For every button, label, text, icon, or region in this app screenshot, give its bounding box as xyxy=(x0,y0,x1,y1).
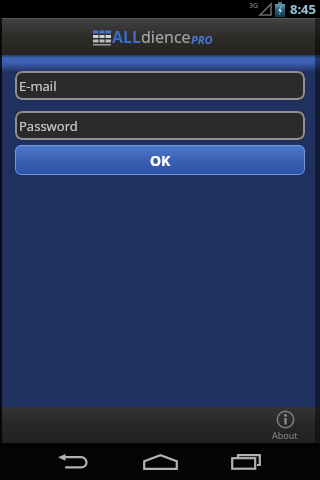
staticText: 3G xyxy=(249,1,259,11)
staticText: PRO xyxy=(191,32,213,47)
staticText: Password xyxy=(19,117,78,135)
staticText: ALL xyxy=(112,26,141,48)
staticText: 8:45 xyxy=(290,0,316,18)
button[interactable] xyxy=(140,443,180,480)
button[interactable]: OK xyxy=(15,145,305,175)
button[interactable]: E-mail xyxy=(15,71,305,100)
button[interactable] xyxy=(52,443,92,480)
button[interactable]: About xyxy=(272,410,298,441)
staticText: E-mail xyxy=(19,77,57,95)
staticText: About xyxy=(272,429,298,441)
button[interactable] xyxy=(226,443,266,480)
button[interactable]: Password xyxy=(15,111,305,140)
staticText: dience xyxy=(141,26,191,48)
staticText: OK xyxy=(150,151,171,170)
